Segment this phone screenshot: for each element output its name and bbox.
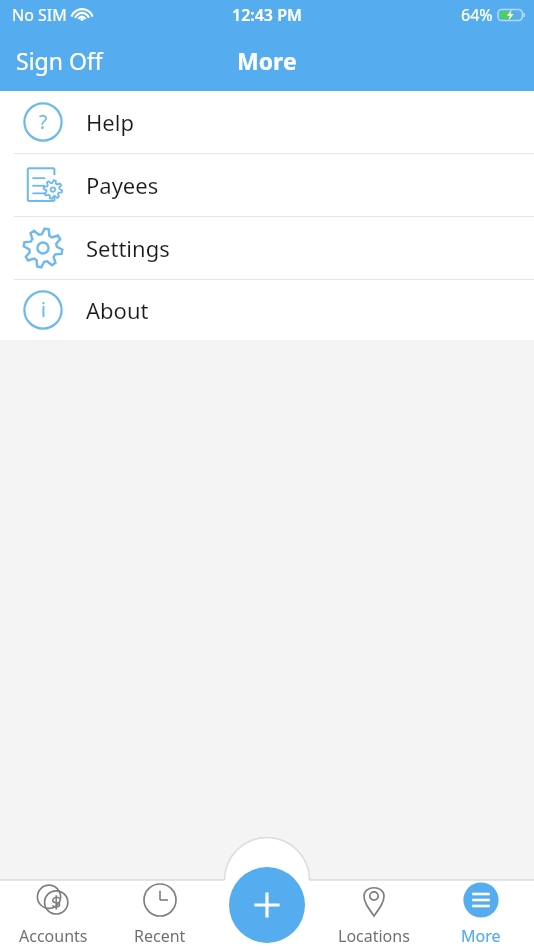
button[interactable]: Add <box>229 867 305 943</box>
button[interactable]: ? <box>0 91 534 153</box>
staticText: Locations <box>338 925 410 947</box>
staticText: 64% <box>461 4 493 26</box>
staticText: i <box>41 297 46 323</box>
staticText: Recent <box>134 925 186 947</box>
staticText: 12:43 PM <box>232 4 302 26</box>
staticText: Help <box>86 107 134 137</box>
staticText: Settings <box>86 233 170 263</box>
button[interactable]: Sign Off <box>0 37 119 84</box>
staticText: Accounts <box>19 925 88 947</box>
staticText: Payees <box>86 170 159 200</box>
staticText: About <box>86 295 149 325</box>
button[interactable]: Accounts <box>0 865 106 950</box>
staticText: More <box>461 925 501 947</box>
button[interactable]: Locations <box>320 865 427 950</box>
staticText: No SIM <box>12 4 67 26</box>
button[interactable]: i <box>0 280 534 340</box>
staticText: ? <box>39 109 48 135</box>
button[interactable]: Payees <box>0 154 534 216</box>
button[interactable]: Settings <box>0 217 534 279</box>
staticText: Sign Off <box>16 45 103 76</box>
button[interactable]: Recent <box>106 865 213 950</box>
button[interactable]: More <box>427 865 534 950</box>
staticText: More <box>237 45 297 76</box>
